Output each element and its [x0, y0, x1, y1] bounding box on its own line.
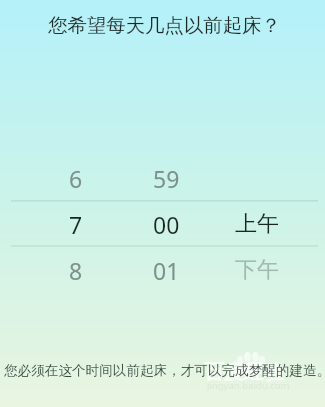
button[interactable]: 8 — [40, 247, 112, 293]
staticText: 上午 — [235, 210, 279, 238]
staticText: jingyan.baidu.com — [207, 379, 290, 392]
button[interactable]: 7 — [40, 201, 112, 247]
staticText: 7 — [69, 209, 83, 240]
button[interactable]: 6 — [40, 155, 112, 201]
button[interactable]: 下午 — [221, 247, 293, 293]
staticText: 6 — [69, 163, 83, 194]
staticText: 百度经验 — [204, 360, 284, 385]
button[interactable]: 00 — [130, 201, 202, 247]
staticText: 下午 — [235, 256, 279, 284]
button[interactable]: 01 — [130, 247, 202, 293]
button[interactable]: 上午 — [221, 201, 293, 247]
button[interactable]: 59 — [130, 155, 202, 201]
staticText: 8 — [69, 255, 83, 286]
staticText: 您必须在这个时间以前起床，才可以完成梦醒的建造。 — [4, 362, 325, 379]
staticText: 59 — [153, 163, 180, 194]
staticText: 00 — [153, 209, 180, 240]
staticText: 01 — [153, 255, 180, 286]
staticText: 您希望每天几点以前起床？ — [2, 13, 325, 37]
